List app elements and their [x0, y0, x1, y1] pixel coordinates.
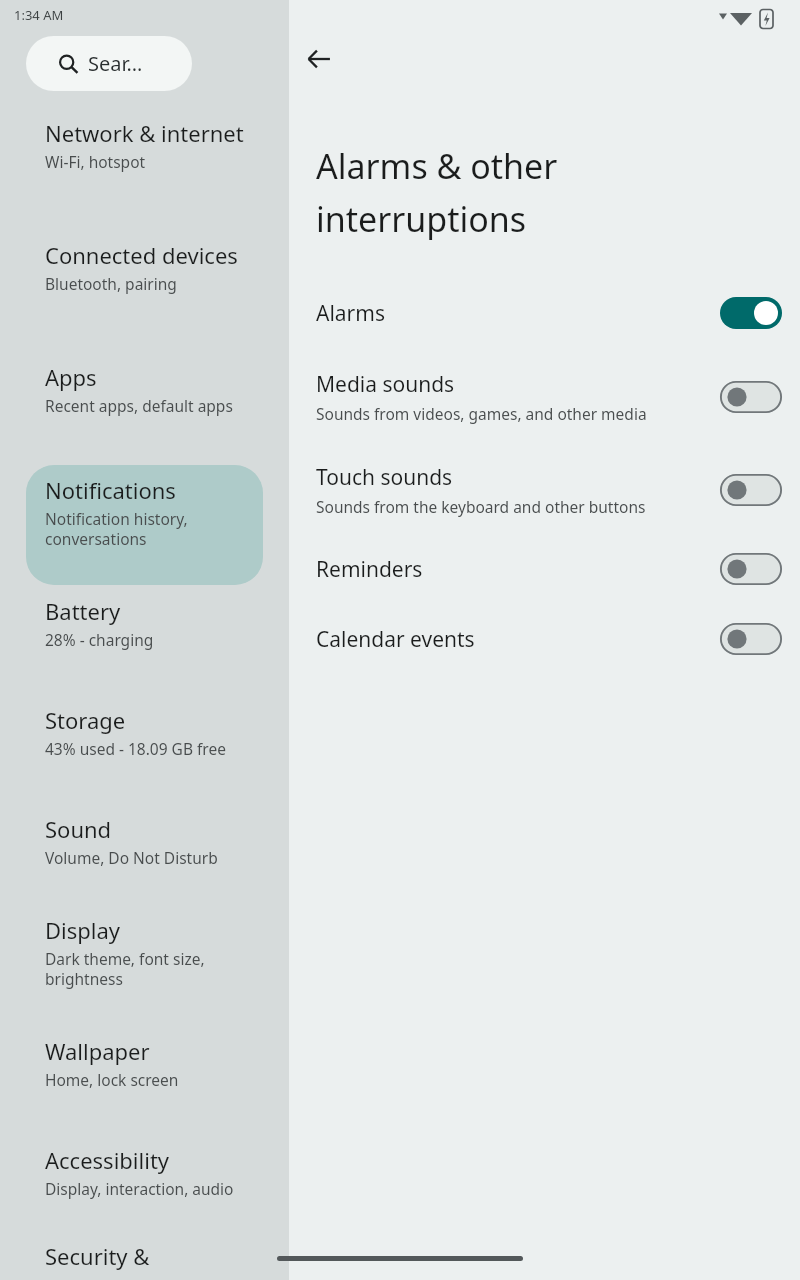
button[interactable]: Security &: [26, 1237, 263, 1277]
staticText: Apps: [45, 362, 97, 392]
staticText: Security &: [45, 1241, 150, 1271]
staticText: Notifications: [45, 475, 176, 505]
button[interactable]: Reminders: [289, 544, 800, 594]
button[interactable]: Wallpaper: [26, 1032, 263, 1096]
staticText: Dark theme, font size, brightness: [45, 948, 257, 990]
button[interactable]: Storage: [26, 701, 263, 765]
button[interactable]: Display: [26, 911, 263, 996]
staticText: Battery: [45, 596, 121, 626]
staticText: Volume, Do Not Disturb: [45, 847, 218, 868]
button[interactable]: Touch sounds: [289, 459, 800, 521]
button[interactable]: Apps: [26, 358, 263, 422]
staticText: Storage: [45, 705, 126, 735]
staticText: Reminders: [316, 555, 423, 584]
staticText: Sound: [45, 814, 112, 844]
button[interactable]: Calendar events: [289, 614, 800, 664]
staticText: Wallpaper: [45, 1036, 150, 1066]
staticText: Alarms: [316, 299, 385, 328]
button[interactable]: Sear…: [26, 36, 192, 91]
staticText: Calendar events: [316, 625, 475, 654]
button[interactable]: Media sounds: [289, 366, 800, 428]
staticText: Bluetooth, pairing: [45, 273, 177, 294]
staticText: Sounds from the keyboard and other butto…: [316, 496, 646, 517]
staticText: 28% - charging: [45, 629, 154, 650]
staticText: Display, interaction, audio: [45, 1178, 234, 1199]
staticText: Network & internet: [45, 118, 244, 148]
staticText: 43% used - 18.09 GB free: [45, 738, 226, 759]
staticText: Accessibility: [45, 1145, 170, 1175]
staticText: Notification history, conversations: [45, 508, 257, 550]
button[interactable]: Accessibility: [26, 1141, 263, 1205]
staticText: 1:34 AM: [14, 6, 64, 24]
button[interactable]: Notifications: [26, 471, 263, 556]
staticText: Display: [45, 915, 121, 945]
button[interactable]: Battery: [26, 592, 263, 656]
button[interactable]: Network & internet: [26, 114, 263, 178]
button[interactable]: Back: [298, 38, 340, 80]
staticText: Sounds from videos, games, and other med…: [316, 403, 647, 424]
staticText: Wi-Fi, hotspot: [45, 151, 146, 172]
staticText: Recent apps, default apps: [45, 395, 233, 416]
staticText: Alarms & other interruptions: [316, 143, 746, 242]
button[interactable]: Connected devices: [26, 236, 263, 300]
staticText: Touch sounds: [316, 463, 453, 492]
staticText: Media sounds: [316, 370, 455, 399]
staticText: Sear…: [88, 50, 143, 77]
staticText: Connected devices: [45, 240, 238, 270]
button[interactable]: Alarms: [289, 288, 800, 338]
staticText: Home, lock screen: [45, 1069, 179, 1090]
button[interactable]: Sound: [26, 810, 263, 874]
